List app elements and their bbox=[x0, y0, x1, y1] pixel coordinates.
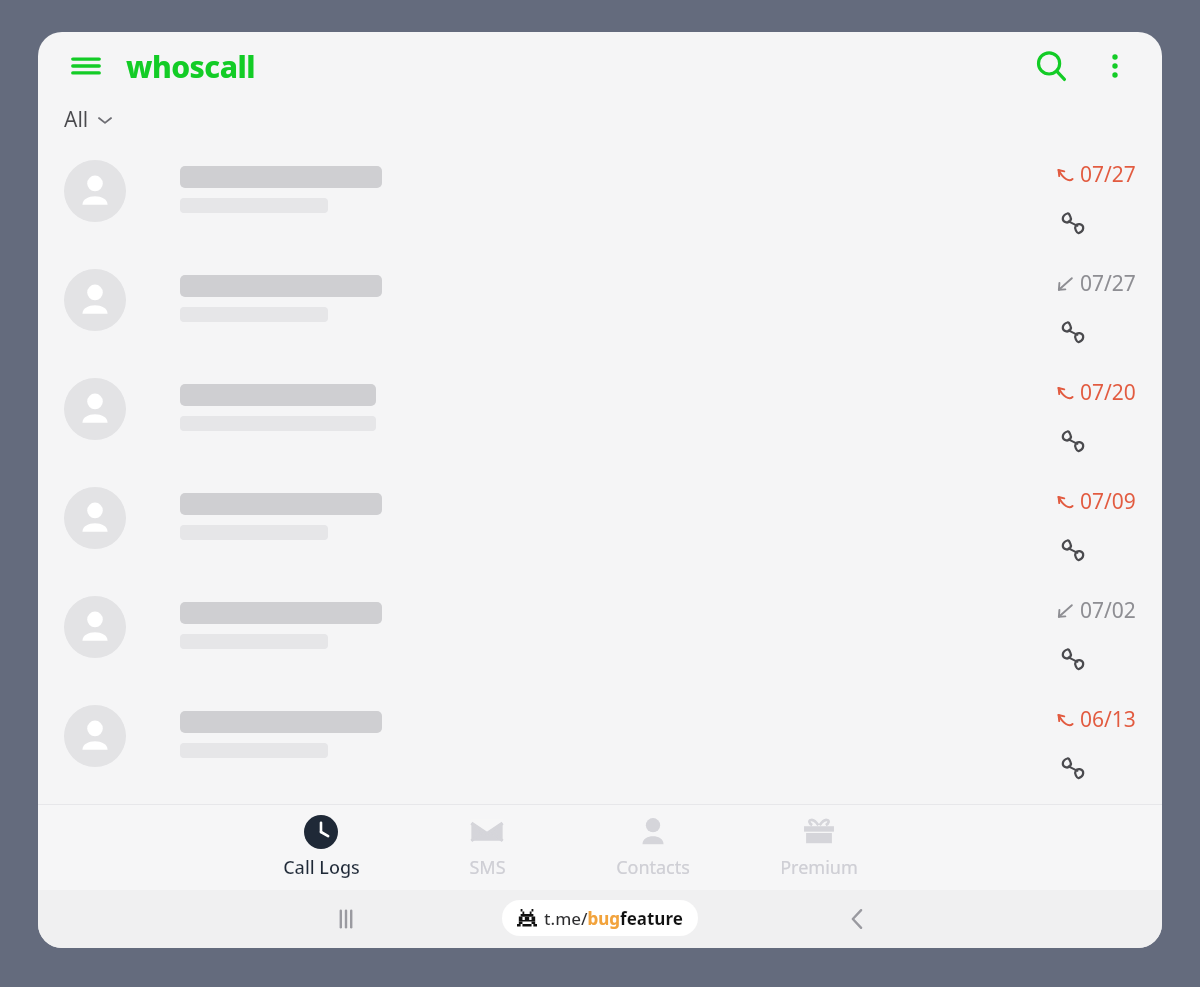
button[interactable]: Call back bbox=[1050, 309, 1096, 355]
button[interactable]: Search bbox=[1020, 35, 1082, 97]
staticText: All bbox=[64, 105, 89, 134]
staticText: Premium bbox=[780, 855, 858, 880]
staticText: SMS bbox=[469, 855, 506, 880]
staticText: Call Logs bbox=[283, 855, 360, 880]
button[interactable]: 06/13 bbox=[38, 683, 1162, 792]
button[interactable]: More options bbox=[1086, 37, 1144, 95]
button[interactable]: Call back bbox=[1050, 527, 1096, 573]
staticText: 07/27 bbox=[1080, 269, 1136, 298]
staticText: 07/02 bbox=[1080, 596, 1136, 625]
button[interactable]: 07/27 bbox=[38, 138, 1162, 247]
button[interactable]: 07/09 bbox=[38, 465, 1162, 574]
staticText: Contacts bbox=[616, 855, 690, 880]
staticText: 07/27 bbox=[1080, 160, 1136, 189]
staticText: 07/20 bbox=[1080, 378, 1136, 407]
button[interactable]: Call back bbox=[1050, 200, 1096, 246]
button[interactable]: Back bbox=[830, 891, 886, 947]
button[interactable]: 07/02 bbox=[38, 574, 1162, 683]
button[interactable]: Contacts bbox=[599, 811, 707, 884]
button[interactable]: Premium bbox=[765, 811, 873, 884]
button[interactable]: Menu bbox=[60, 40, 112, 92]
button[interactable]: SMS bbox=[433, 811, 541, 884]
staticText: 07/09 bbox=[1080, 487, 1136, 516]
button[interactable]: All bbox=[60, 101, 117, 138]
button[interactable]: Call Logs bbox=[267, 811, 375, 884]
button[interactable]: 07/20 bbox=[38, 356, 1162, 465]
button[interactable]: Call back bbox=[1050, 745, 1096, 791]
staticText: t.me/bugfeature bbox=[544, 907, 683, 930]
staticText: 06/13 bbox=[1080, 705, 1136, 734]
button[interactable]: Call back bbox=[1050, 418, 1096, 464]
button[interactable]: 07/27 bbox=[38, 247, 1162, 356]
staticText: whoscall bbox=[126, 46, 256, 87]
button[interactable]: Recent apps bbox=[318, 891, 374, 947]
button[interactable]: Call back bbox=[1050, 636, 1096, 682]
